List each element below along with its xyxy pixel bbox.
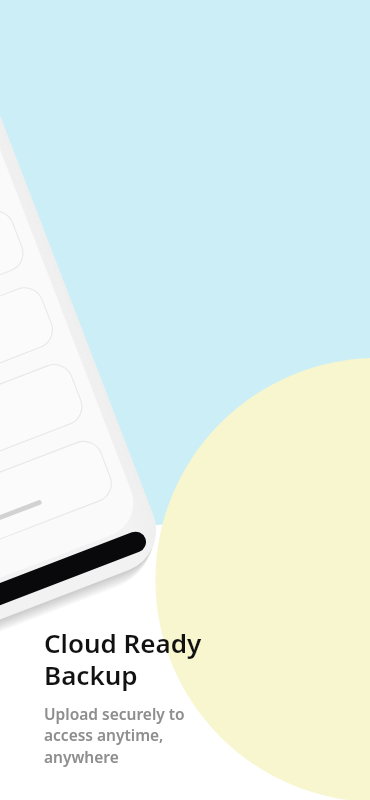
button[interactable]: Next onboarding page: [0, 0, 370, 800]
staticText: Upload securely to access anytime, anywh…: [44, 703, 185, 768]
staticText: Cloud Ready Backup: [44, 625, 202, 693]
